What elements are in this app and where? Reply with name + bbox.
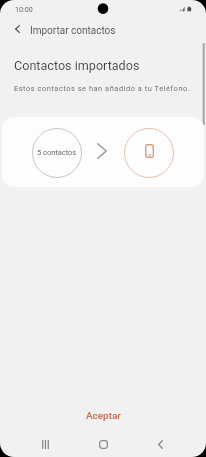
staticText: Contactos importados (14, 58, 140, 73)
button[interactable]: Atrás (149, 433, 172, 456)
button[interactable]: Atrás (6, 18, 28, 40)
button[interactable]: Aceptar (0, 403, 206, 429)
button[interactable]: Inicio (92, 433, 115, 456)
staticText: Importar contactos (30, 25, 116, 37)
staticText: Estos contactos se han añadido a tu Telé… (14, 84, 191, 93)
staticText: Aceptar (86, 410, 121, 422)
staticText: 5 contactos (37, 148, 77, 157)
button[interactable]: Aplicaciones recientes (34, 433, 57, 456)
button[interactable]: Teléfono (124, 128, 174, 178)
button[interactable]: 5 contactos (32, 128, 82, 178)
staticText: 10:00 (15, 5, 33, 13)
